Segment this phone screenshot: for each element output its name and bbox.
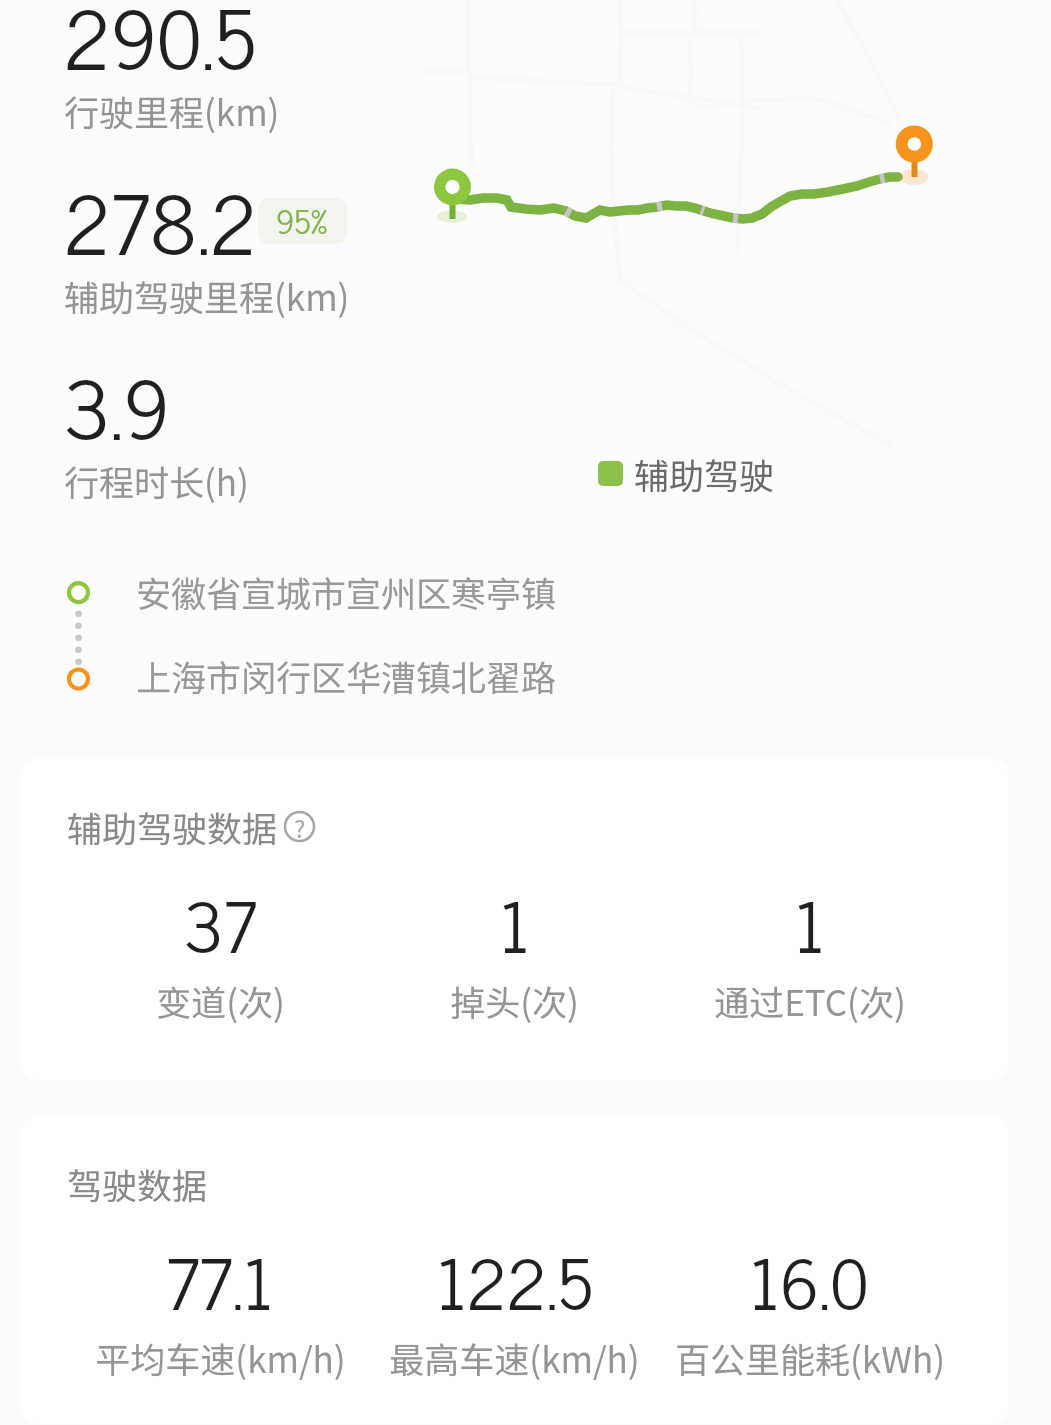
staticText: 通过ETC(次) xyxy=(714,975,906,1026)
button[interactable]: 帮助 xyxy=(284,811,315,842)
staticText: 变道(次) xyxy=(156,975,285,1026)
staticText: 37 xyxy=(184,866,257,979)
staticText: 1 xyxy=(795,866,825,979)
staticText: 95% xyxy=(276,198,328,240)
staticText: 平均车速(km/h) xyxy=(95,1332,346,1383)
staticText: ? xyxy=(294,810,306,841)
button[interactable]: 辅助驾驶数据 xyxy=(21,758,1009,1080)
staticText: 辅助驾驶里程(km) xyxy=(64,270,350,321)
staticText: 掉头(次) xyxy=(450,975,579,1026)
staticText: 行驶里程(km) xyxy=(64,85,280,136)
staticText: 290.5 xyxy=(64,0,257,101)
staticText: 安徽省宣城市宣州区寒亭镇 xyxy=(136,566,557,617)
staticText: 122.5 xyxy=(437,1223,593,1336)
staticText: 最高车速(km/h) xyxy=(389,1332,640,1383)
staticText: 1 xyxy=(500,866,530,979)
staticText: 百公里能耗(kWh) xyxy=(675,1332,945,1383)
button[interactable]: 驾驶数据 xyxy=(21,1115,1009,1424)
button[interactable]: 95% xyxy=(258,198,347,244)
staticText: 3.9 xyxy=(64,338,170,471)
staticText: 77.1 xyxy=(166,1223,274,1336)
staticText: 辅助驾驶数据 xyxy=(67,801,278,852)
staticText: 16.0 xyxy=(750,1223,869,1336)
staticText: 辅助驾驶 xyxy=(634,448,775,499)
staticText: 行程时长(h) xyxy=(64,455,249,506)
staticText: 驾驶数据 xyxy=(67,1158,208,1209)
staticText: 上海市闵行区华漕镇北翟路 xyxy=(136,650,557,701)
staticText: 278.2 xyxy=(64,153,258,286)
